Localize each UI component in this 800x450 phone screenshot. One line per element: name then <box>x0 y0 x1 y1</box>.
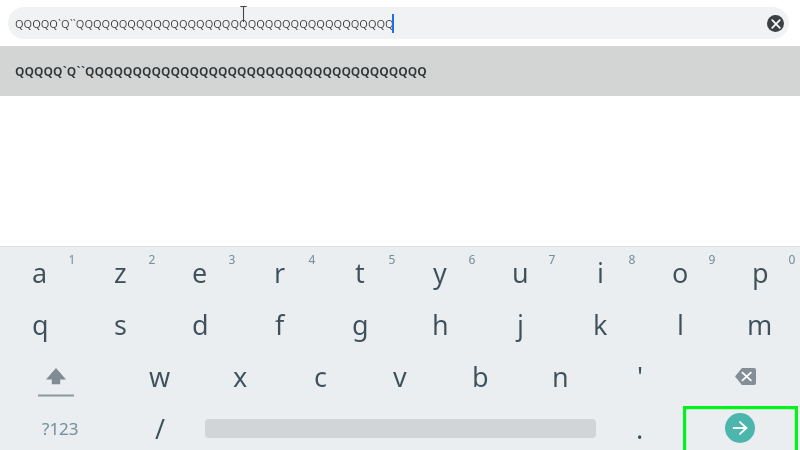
button[interactable]: j <box>480 298 560 350</box>
staticText: f <box>275 306 285 343</box>
button[interactable]: t <box>320 246 400 298</box>
button[interactable]: w <box>120 350 200 402</box>
staticText: b <box>472 358 489 395</box>
button[interactable]: QQQQQ`Q``QQQQQQQQQQQQQQQQQQQQQQQQQQQQQQQ… <box>0 46 800 96</box>
staticText: w <box>149 358 171 395</box>
staticText: t <box>355 254 365 291</box>
staticText: 4 <box>306 251 318 267</box>
button[interactable]: f <box>240 298 320 350</box>
staticText: j <box>517 306 524 343</box>
staticText: q <box>32 306 49 343</box>
button[interactable]: h <box>400 298 480 350</box>
staticText: QQQQQ`Q``QQQQQQQQQQQQQQQQQQQQQQQQQQQQQQQ… <box>15 16 394 31</box>
button[interactable]: i <box>560 246 640 298</box>
button[interactable]: z <box>80 246 160 298</box>
button[interactable]: d <box>160 298 240 350</box>
staticText: x <box>233 358 248 395</box>
button[interactable]: c <box>280 350 360 402</box>
button[interactable]: Enter <box>680 402 800 450</box>
button[interactable]: p <box>720 246 800 298</box>
staticText: 5 <box>386 251 398 267</box>
staticText: d <box>192 306 209 343</box>
button[interactable]: Switch to symbols <box>0 402 120 450</box>
button[interactable]: e <box>160 246 240 298</box>
staticText: r <box>274 254 286 291</box>
staticText: ' <box>637 358 644 395</box>
button[interactable]: ' <box>600 350 680 402</box>
staticText: 9 <box>706 251 718 267</box>
button[interactable]: r <box>240 246 320 298</box>
button[interactable]: x <box>200 350 280 402</box>
staticText: 0 <box>786 251 798 267</box>
staticText: o <box>672 254 689 291</box>
staticText: l <box>677 306 684 343</box>
button[interactable]: n <box>520 350 600 402</box>
staticText: 1 <box>66 251 78 267</box>
button[interactable]: QQQQQ`Q``QQQQQQQQQQQQQQQQQQQQQQQQQQQQQQQ… <box>8 7 789 39</box>
staticText: s <box>114 306 127 343</box>
staticText: 2 <box>146 251 158 267</box>
staticText: c <box>314 358 327 395</box>
button[interactable]: m <box>720 298 800 350</box>
staticText: y <box>433 254 447 291</box>
button[interactable]: o <box>640 246 720 298</box>
staticText: i <box>597 254 604 291</box>
button[interactable]: a <box>0 246 80 298</box>
staticText: n <box>552 358 569 395</box>
staticText: e <box>192 254 208 291</box>
staticText: g <box>352 306 369 343</box>
button[interactable]: . <box>600 402 680 450</box>
staticText: u <box>512 254 529 291</box>
button[interactable]: y <box>400 246 480 298</box>
button[interactable]: Backspace <box>680 350 800 402</box>
button[interactable]: b <box>440 350 520 402</box>
button[interactable]: k <box>560 298 640 350</box>
button[interactable]: l <box>640 298 720 350</box>
staticText: / <box>155 410 166 447</box>
button[interactable]: s <box>80 298 160 350</box>
button[interactable]: v <box>360 350 440 402</box>
staticText: v <box>393 358 407 395</box>
staticText: k <box>593 306 608 343</box>
staticText: 6 <box>466 251 478 267</box>
staticText: 8 <box>626 251 638 267</box>
staticText: 3 <box>226 251 238 267</box>
staticText: QQQQQ`Q``QQQQQQQQQQQQQQQQQQQQQQQQQQQQQQQ… <box>15 63 427 79</box>
button[interactable]: / <box>120 402 200 450</box>
button[interactable]: Shift <box>0 350 120 402</box>
button[interactable]: u <box>480 246 560 298</box>
staticText: ?123 <box>42 417 79 440</box>
staticText: z <box>114 254 127 291</box>
staticText: m <box>747 306 773 343</box>
button[interactable]: g <box>320 298 400 350</box>
staticText: a <box>32 254 48 291</box>
button[interactable]: q <box>0 298 80 350</box>
staticText: h <box>432 306 449 343</box>
staticText: p <box>752 254 769 291</box>
button[interactable]: Space <box>200 402 600 450</box>
staticText: 7 <box>546 251 558 267</box>
staticText: . <box>636 410 644 447</box>
button[interactable]: Clear query <box>767 15 784 32</box>
